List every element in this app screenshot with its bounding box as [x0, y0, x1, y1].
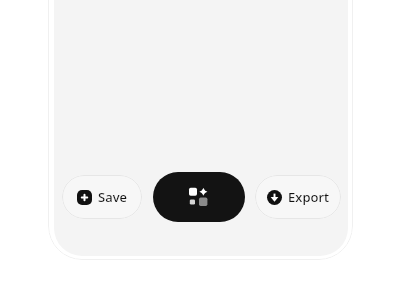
staticText: Export — [288, 188, 329, 206]
button[interactable]: Export — [255, 175, 341, 219]
button[interactable]: Create — [153, 172, 245, 222]
button[interactable]: Save — [62, 175, 142, 219]
staticText: Save — [98, 188, 127, 206]
